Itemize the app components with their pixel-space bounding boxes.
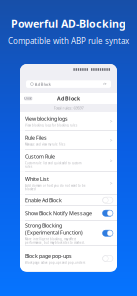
staticText: Block page active pop-ups and pop-unders (25, 261, 85, 264)
button[interactable]: White List (20, 172, 117, 194)
staticText: Show Block Notify Message (25, 210, 92, 217)
staticText: Total rules: 69597 (53, 105, 83, 111)
button[interactable]: View blocking logs (20, 112, 117, 130)
button[interactable]: Strong Blocking (Experimental Function) (20, 221, 117, 245)
staticText: Block page pop-ups (25, 252, 72, 260)
staticText: Manage and view my rule files (25, 143, 65, 146)
staticText: Enable Ad Block (25, 197, 62, 204)
button[interactable]: Show Block Notify Message (20, 206, 117, 220)
staticText: Powerful AD-Blocking (11, 16, 126, 31)
button[interactable]: Custom Rule (20, 150, 117, 171)
staticText: Compatible with ABP rule syntax (8, 36, 129, 46)
staticText: > (109, 118, 112, 125)
staticText: Ad Block (35, 81, 51, 87)
button[interactable]: Close (24, 96, 32, 101)
staticText: ⟳ (103, 82, 106, 86)
staticText: Custom Rule (25, 153, 55, 160)
button[interactable]: Rule Files (20, 131, 117, 149)
staticText: View blocking logs (25, 115, 68, 122)
staticText: Rule Files (25, 134, 47, 141)
staticText: > (109, 157, 112, 164)
staticText: Add domain or host you do not want to be… (25, 184, 86, 191)
staticText: Custom rule list and quick add to custom… (25, 161, 81, 168)
staticText: White List (25, 175, 49, 182)
staticText: Ad Block (57, 95, 80, 102)
staticText: Strong Blocking (Experimental Function) (25, 222, 83, 236)
staticText: > (109, 180, 112, 187)
staticText: More intelligent blocking, may affect pe… (25, 237, 85, 244)
button[interactable]: Block page pop-ups (20, 246, 117, 271)
staticText: > (109, 137, 112, 144)
button[interactable]: Enable Ad Block (20, 195, 117, 205)
staticText: View blocking logs for blocking rules (25, 124, 77, 127)
staticText: Close (24, 97, 32, 100)
